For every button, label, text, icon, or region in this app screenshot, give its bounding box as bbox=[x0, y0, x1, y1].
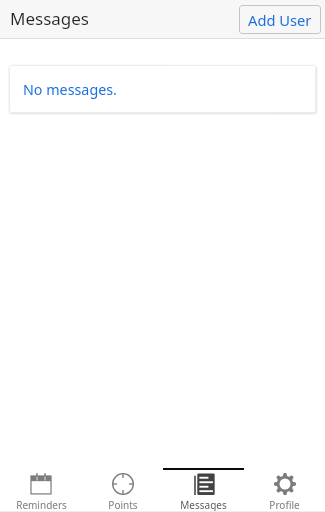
staticText: Profile bbox=[269, 498, 300, 512]
staticText: Points bbox=[108, 498, 138, 512]
other: Points bbox=[112, 473, 134, 495]
button[interactable]: Profile bbox=[244, 467, 325, 512]
button[interactable]: No messages. bbox=[9, 65, 316, 113]
staticText: Messages bbox=[180, 498, 227, 512]
staticText: Reminders bbox=[16, 498, 67, 512]
other: Profile bbox=[274, 473, 296, 495]
button[interactable]: Add User bbox=[239, 5, 321, 34]
staticText: Add User bbox=[248, 10, 312, 30]
other: Reminders bbox=[30, 473, 52, 495]
other: Messages bbox=[193, 473, 215, 495]
button[interactable]: Reminders bbox=[0, 467, 82, 512]
button[interactable]: Points bbox=[82, 467, 163, 512]
button[interactable]: Messages bbox=[163, 467, 244, 512]
staticText: Messages bbox=[10, 7, 90, 30]
staticText: No messages. bbox=[23, 80, 117, 99]
